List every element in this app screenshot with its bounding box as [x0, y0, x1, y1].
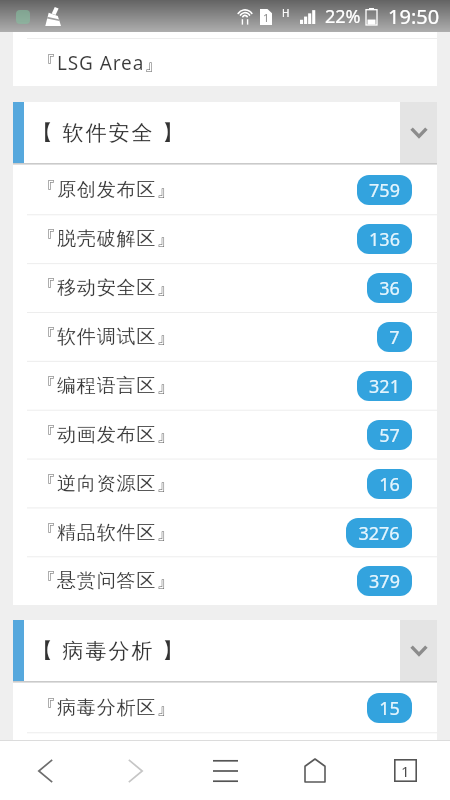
staticText: 321 — [369, 374, 400, 399]
button[interactable]: 『精品软件区』 — [13, 508, 437, 557]
staticText: 759 — [369, 178, 400, 203]
button[interactable]: Back — [0, 741, 90, 800]
staticText: 379 — [369, 569, 400, 594]
staticText: 『逆向资源区』 — [37, 472, 177, 496]
staticText: 57 — [379, 423, 400, 448]
staticText: 【 病毒分析 】 — [32, 636, 185, 665]
staticText: 『原创发布区』 — [37, 178, 177, 202]
button[interactable]: 『原创发布区』 — [13, 165, 437, 214]
staticText: 16 — [379, 472, 400, 497]
staticText: 3276 — [358, 521, 400, 546]
staticText: 1 — [263, 10, 270, 25]
button[interactable]: 『动画发布区』 — [13, 410, 437, 459]
staticText: 22% — [325, 4, 361, 29]
staticText: 【 软件安全 】 — [32, 118, 185, 147]
staticText: 19:50 — [388, 3, 440, 30]
staticText: 『动画发布区』 — [37, 423, 177, 447]
staticText: 7 — [389, 325, 400, 350]
staticText: H — [282, 6, 290, 20]
button[interactable]: 『编程语言区』 — [13, 361, 437, 410]
staticText: 1 — [401, 761, 410, 781]
other: Collapse — [410, 645, 428, 656]
button[interactable]: Forward — [90, 741, 180, 800]
button[interactable]: Home — [270, 741, 360, 800]
button[interactable]: 『脱壳破解区』 — [13, 214, 437, 263]
staticText: 『悬赏问答区』 — [37, 569, 177, 593]
staticText: 『软件调试区』 — [37, 325, 177, 349]
button[interactable]: 『悬赏问答区』 — [13, 557, 437, 605]
button[interactable]: 『软件调试区』 — [13, 312, 437, 361]
staticText: 『精品软件区』 — [37, 521, 177, 545]
button[interactable]: 【 病毒分析 】 — [13, 620, 437, 681]
staticText: 15 — [379, 696, 400, 721]
button[interactable]: Tabs — [360, 741, 450, 800]
button[interactable]: 『移动安全区』 — [13, 263, 437, 312]
staticText: 『编程语言区』 — [37, 374, 177, 398]
button[interactable] — [13, 732, 437, 740]
staticText: 『移动安全区』 — [37, 276, 177, 300]
other: Collapse — [410, 127, 428, 138]
staticText: 136 — [369, 227, 400, 252]
button[interactable]: 【 软件安全 】 — [13, 102, 437, 163]
staticText: 『脱壳破解区』 — [37, 227, 177, 251]
staticText: 『病毒分析区』 — [37, 696, 177, 720]
staticText: 36 — [379, 276, 400, 301]
button[interactable]: 『病毒分析区』 — [13, 683, 437, 732]
button[interactable]: 『逆向资源区』 — [13, 459, 437, 508]
staticText: 『LSG Area』 — [37, 50, 165, 76]
button[interactable]: 『LSG Area』 — [13, 39, 437, 86]
button[interactable]: Menu — [180, 741, 270, 800]
